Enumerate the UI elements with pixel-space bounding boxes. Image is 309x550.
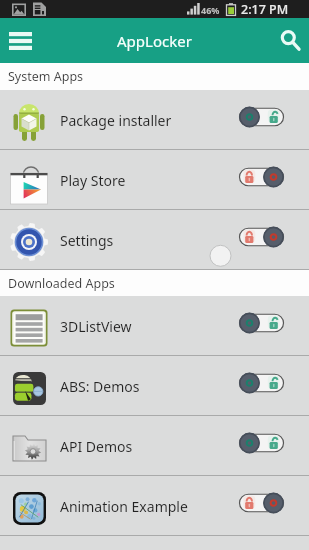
button[interactable]: Animation Example (0, 476, 309, 536)
button[interactable]: Unlock this app (238, 225, 285, 249)
button[interactable]: Package installer (0, 90, 309, 150)
button[interactable]: Lock this app (238, 311, 285, 335)
button[interactable]: Settings (0, 210, 309, 270)
button[interactable]: 3DListView (0, 296, 309, 356)
staticText: API Demos (60, 437, 133, 456)
button[interactable]: Lock this app (238, 371, 285, 395)
button[interactable]: Lock this app (238, 105, 285, 129)
staticText: Animation Example (60, 497, 188, 516)
staticText: ABS: Demos (60, 377, 140, 396)
staticText: AppLocker (117, 31, 192, 51)
staticText: 46% (201, 4, 220, 16)
button[interactable]: ABS: Demos (0, 356, 309, 416)
button[interactable]: Search (273, 18, 309, 63)
button[interactable]: Play Store (0, 150, 309, 210)
button[interactable]: Unlock this app (238, 165, 285, 189)
staticText: Downloaded Apps (8, 275, 115, 292)
staticText: 3DListView (60, 317, 132, 336)
staticText: Package installer (60, 111, 172, 130)
button[interactable]: Open navigation menu (0, 18, 40, 63)
staticText: Play Store (60, 171, 126, 190)
button[interactable]: Lock this app (238, 431, 285, 455)
staticText: 2:17 PM (241, 1, 289, 18)
button[interactable]: API Demos (0, 416, 309, 476)
staticText: Settings (60, 231, 114, 250)
staticText: System Apps (8, 68, 84, 85)
button[interactable]: Unlock this app (238, 491, 285, 515)
